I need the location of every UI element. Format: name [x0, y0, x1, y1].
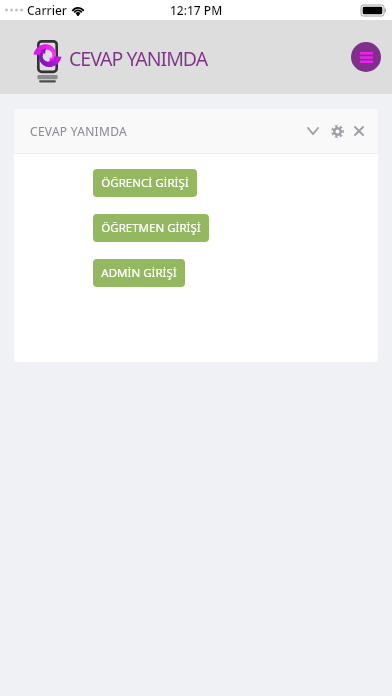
staticText: Carrier [27, 2, 67, 18]
staticText: ADMİN GİRİŞİ [101, 265, 177, 281]
staticText: CEVAP YANIMDA [69, 45, 208, 72]
button[interactable]: Close [348, 120, 370, 142]
staticText: ÖĞRETMEN GİRİŞİ [101, 220, 201, 236]
staticText: 12:17 PM [170, 2, 223, 18]
button[interactable]: Settings [326, 120, 348, 142]
button[interactable]: ÖĞRETMEN GİRİŞİ [93, 214, 209, 242]
staticText: ÖĞRENCİ GİRİŞİ [101, 175, 189, 191]
button[interactable]: Menu [351, 42, 381, 72]
button[interactable]: Collapse [302, 120, 324, 142]
button[interactable]: ÖĞRENCİ GİRİŞİ [93, 169, 197, 197]
staticText: CEVAP YANIMDA [30, 123, 127, 139]
button[interactable]: ADMİN GİRİŞİ [93, 259, 185, 287]
